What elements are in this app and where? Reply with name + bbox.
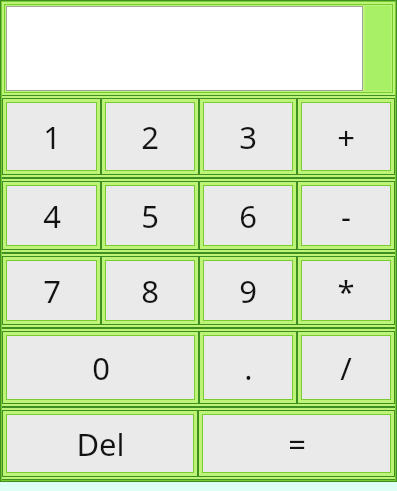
button[interactable]: + — [302, 103, 390, 170]
staticText: 2 — [141, 116, 159, 158]
button[interactable]: 3 — [204, 103, 292, 170]
staticText: Del — [76, 423, 125, 465]
button[interactable]: * — [302, 261, 390, 320]
button[interactable]: 5 — [106, 186, 194, 245]
staticText: 6 — [239, 195, 257, 237]
staticText: = — [288, 423, 306, 465]
button[interactable]: 8 — [106, 261, 194, 320]
staticText: 5 — [141, 195, 159, 237]
staticText: - — [341, 195, 351, 237]
button[interactable]: = — [203, 415, 390, 472]
staticText: 0 — [92, 347, 110, 389]
button[interactable]: 2 — [106, 103, 194, 170]
button[interactable]: / — [302, 336, 390, 399]
staticText: 3 — [239, 116, 257, 158]
button[interactable]: 4 — [7, 186, 96, 245]
button[interactable]: 0 — [7, 336, 194, 399]
button[interactable]: 1 — [7, 103, 96, 170]
staticText: 8 — [141, 270, 159, 312]
button[interactable]: Del — [7, 415, 193, 472]
staticText: + — [337, 116, 355, 158]
button[interactable]: 9 — [204, 261, 292, 320]
button[interactable]: . — [204, 336, 292, 399]
button[interactable]: - — [302, 186, 390, 245]
staticText: 9 — [239, 270, 257, 312]
staticText: 4 — [43, 195, 61, 237]
staticText: 7 — [43, 270, 61, 312]
button[interactable]: 7 — [7, 261, 96, 320]
staticText: / — [340, 347, 352, 389]
button[interactable]: 6 — [204, 186, 292, 245]
staticText: 1 — [43, 116, 61, 158]
staticText: * — [337, 270, 355, 312]
staticText: . — [244, 347, 253, 389]
